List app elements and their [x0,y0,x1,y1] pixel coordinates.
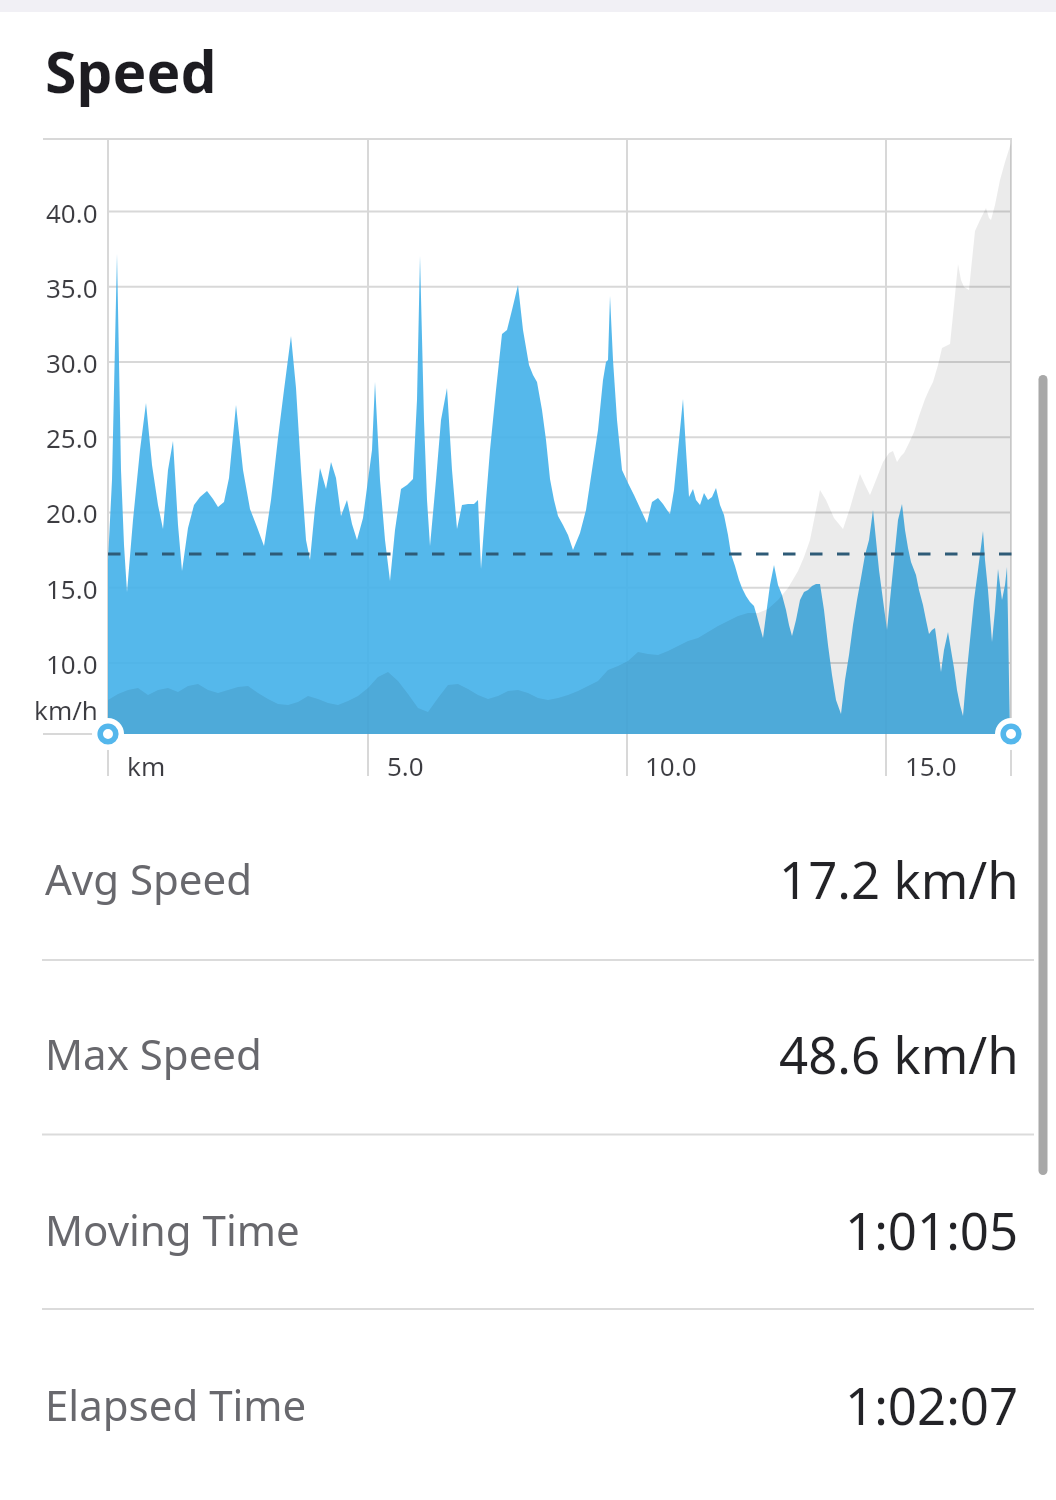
staticText: 5.0 [387,748,424,783]
staticText: 25.0 [46,420,98,455]
staticText: km/h [34,692,98,727]
button[interactable]: Avg Speed [0,791,1056,965]
staticText: km [127,748,166,783]
staticText: Speed [45,32,217,110]
staticText: 1:01:05 [845,1195,1019,1264]
staticText: 17.2 km/h [779,844,1019,913]
button[interactable]: Elapsed Time [0,1317,1056,1491]
staticText: 10.0 [645,748,697,783]
staticText: Avg Speed [45,850,253,907]
staticText: 15.0 [46,571,98,606]
staticText: 1:02:07 [845,1370,1019,1439]
staticText: Moving Time [45,1201,300,1258]
staticText: 30.0 [46,345,98,380]
staticText: 40.0 [46,195,98,230]
staticText: 10.0 [46,646,98,681]
staticText: 48.6 km/h [779,1019,1019,1088]
staticText: Elapsed Time [45,1376,307,1433]
staticText: Max Speed [45,1025,262,1082]
button[interactable]: Moving Time [0,1142,1056,1316]
button[interactable]: Max Speed [0,966,1056,1140]
staticText: 35.0 [46,270,98,305]
staticText: 20.0 [46,495,98,530]
staticText: 15.0 [905,748,957,783]
